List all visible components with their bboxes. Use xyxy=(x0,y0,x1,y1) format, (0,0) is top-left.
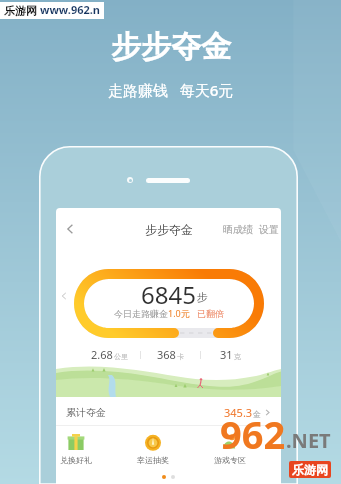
staticText: 31 xyxy=(220,347,233,362)
staticText: 走路赚钱 每天6元 xyxy=(108,80,234,100)
staticText: 步 xyxy=(197,290,208,304)
button[interactable]: 返回 xyxy=(58,217,82,241)
button[interactable]: 晒成绩 xyxy=(221,219,255,240)
staticText: 金 xyxy=(253,409,261,419)
staticText: 乐游网 xyxy=(4,4,37,18)
staticText: 游戏专区 xyxy=(214,455,246,465)
staticText: 1.0元 xyxy=(168,307,190,319)
staticText: 345.3 xyxy=(224,405,253,420)
staticText: 公里 xyxy=(114,352,128,361)
staticText: 克 xyxy=(234,352,241,361)
staticText: 步步夺金 xyxy=(145,222,193,237)
staticText: 962 xyxy=(220,408,286,460)
staticText: www.962.net xyxy=(40,2,104,19)
staticText: 乐游网 xyxy=(292,462,328,477)
staticText: 6845 xyxy=(141,278,196,311)
staticText: .NET xyxy=(286,427,331,454)
staticText: 幸运抽奖 xyxy=(137,455,169,465)
staticText: 今日走路赚金 xyxy=(114,308,168,319)
staticText: 步步夺金 xyxy=(111,28,231,66)
button[interactable]: 上一页 xyxy=(58,290,70,302)
staticText: 累计夺金 xyxy=(66,406,106,419)
button[interactable]: 累计夺金 xyxy=(59,399,278,425)
staticText: 晒成绩 xyxy=(223,223,253,236)
staticText: 设置 xyxy=(259,223,279,236)
button[interactable]: 兑换好礼 xyxy=(60,432,92,465)
staticText: 兑换好礼 xyxy=(60,455,92,465)
button[interactable]: 设置 xyxy=(257,219,281,240)
button[interactable]: 幸运抽奖 xyxy=(137,432,169,465)
staticText: 卡 xyxy=(177,352,184,361)
button[interactable]: 游戏专区 xyxy=(214,432,246,465)
staticText: 已翻倍 xyxy=(197,308,224,319)
staticText: 2.68 xyxy=(91,347,113,362)
staticText: 368 xyxy=(157,347,176,362)
